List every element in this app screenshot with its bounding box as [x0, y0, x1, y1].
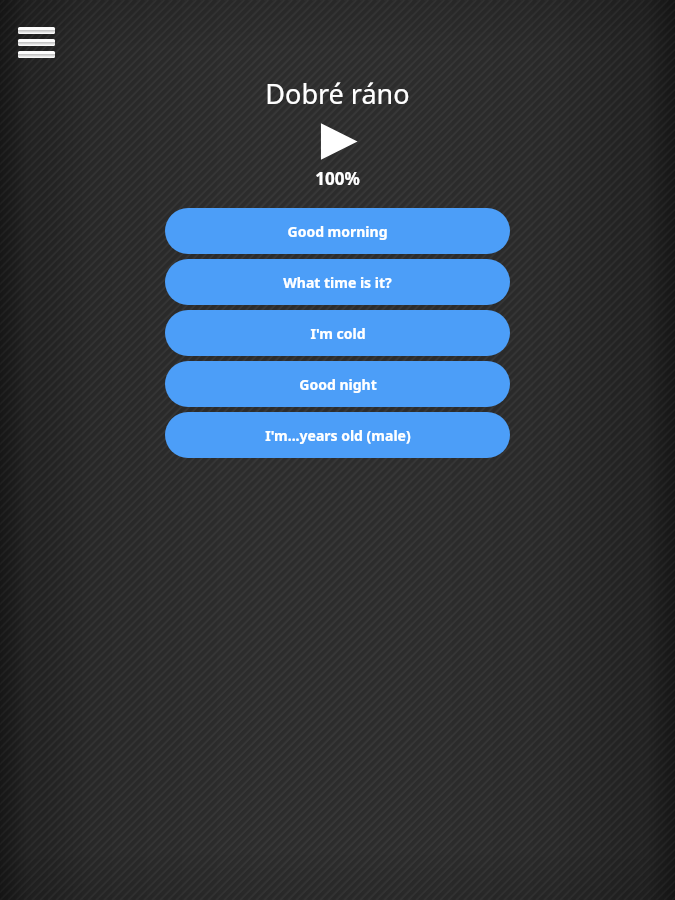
staticText: I'm...years old (male): [265, 426, 411, 445]
button[interactable]: Good morning: [165, 208, 510, 254]
staticText: 100%: [315, 167, 360, 190]
button[interactable]: I'm cold: [165, 310, 510, 356]
staticText: Dobré ráno: [265, 75, 410, 112]
staticText: Good night: [299, 375, 377, 394]
staticText: Good morning: [287, 222, 388, 241]
button[interactable]: Open navigation menu: [8, 14, 64, 64]
staticText: I'm cold: [310, 324, 366, 343]
button[interactable]: What time is it?: [165, 259, 510, 305]
button[interactable]: Play pronunciation: [310, 121, 366, 161]
staticText: What time is it?: [283, 273, 392, 292]
button[interactable]: I'm...years old (male): [165, 412, 510, 458]
button[interactable]: Good night: [165, 361, 510, 407]
